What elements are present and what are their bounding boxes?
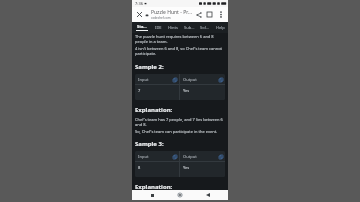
staticText: participate. xyxy=(135,51,157,56)
staticText: Explanation: xyxy=(135,106,173,114)
button[interactable]: More options xyxy=(215,9,226,20)
staticText: and 8. xyxy=(135,122,147,127)
button[interactable]: Sol… xyxy=(197,22,212,33)
button[interactable]: Help xyxy=(212,22,228,33)
staticText: Input xyxy=(138,154,149,159)
staticText: Yes xyxy=(183,165,190,170)
button[interactable]: Copy Output xyxy=(218,77,223,82)
staticText: The puzzle hunt requires between 6 and 8 xyxy=(135,34,214,39)
staticText: 8 xyxy=(138,165,141,170)
button[interactable]: Hints xyxy=(165,22,181,33)
staticText: Help xyxy=(216,25,225,30)
button[interactable]: Share xyxy=(193,9,204,20)
staticText: Sub… xyxy=(184,25,195,30)
button[interactable]: Sub… xyxy=(181,22,197,33)
button[interactable]: Home xyxy=(176,191,184,199)
staticText: 7 xyxy=(138,88,141,93)
staticText: Input xyxy=(138,77,149,82)
staticText: Output xyxy=(183,77,197,82)
button[interactable]: Back xyxy=(204,191,212,199)
staticText: 7:36 xyxy=(135,1,143,6)
staticText: Yes xyxy=(183,88,190,93)
button[interactable]: Copy Output xyxy=(218,154,223,159)
staticText: Output xyxy=(183,154,197,159)
staticText: Sample 3: xyxy=(135,140,164,148)
staticText: people in a team. xyxy=(135,39,168,44)
staticText: Sample 2: xyxy=(135,63,164,71)
staticText: Sta… xyxy=(137,24,147,29)
button[interactable]: Open in browser xyxy=(204,9,215,20)
button[interactable]: Copy Input xyxy=(172,154,177,159)
button[interactable]: Close xyxy=(134,9,145,20)
button[interactable]: Recent apps xyxy=(148,191,156,199)
staticText: codechef.com xyxy=(151,16,171,20)
button[interactable]: Copy Input xyxy=(172,77,177,82)
staticText: Puzzle Hunt - Pro… xyxy=(151,9,193,16)
staticText: Chef's team has 7 people, and 7 lies bet… xyxy=(135,117,223,122)
staticText: Explanation: xyxy=(135,183,173,190)
button[interactable]: IDE xyxy=(151,22,165,33)
button[interactable]: Puzzle Hunt - Pro… xyxy=(151,9,193,20)
staticText: Sol… xyxy=(200,25,209,30)
staticText: Hints xyxy=(168,25,179,30)
staticText: IDE xyxy=(155,25,162,30)
staticText: 4 isn't between 6 and 8, so Chef's team … xyxy=(135,46,223,51)
staticText: So, Chef's team can participate in the e… xyxy=(135,129,218,134)
button[interactable]: Sta… xyxy=(132,22,151,33)
